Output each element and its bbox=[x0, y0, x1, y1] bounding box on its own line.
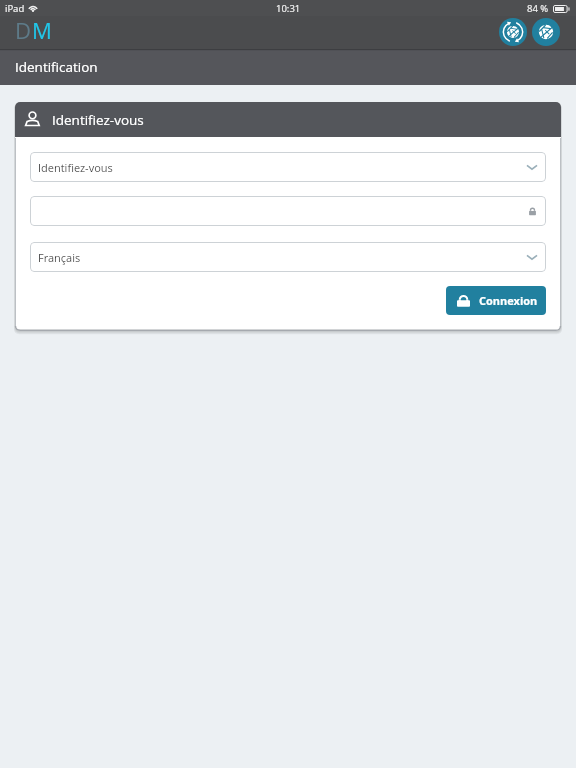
staticText: Identifiez-vous bbox=[38, 160, 113, 175]
button[interactable]: Identifiez-vous bbox=[30, 152, 546, 182]
staticText: 84 % bbox=[527, 2, 549, 15]
staticText: Identification bbox=[15, 58, 98, 76]
staticText: Français bbox=[38, 250, 81, 265]
staticText: D bbox=[15, 15, 32, 45]
staticText: iPad bbox=[5, 2, 25, 15]
staticText: M bbox=[32, 15, 52, 45]
staticText: Connexion bbox=[479, 293, 538, 308]
staticText: 10:31 bbox=[276, 2, 301, 15]
button[interactable] bbox=[30, 196, 546, 226]
button[interactable]: Français bbox=[30, 242, 546, 272]
button[interactable]: Synchroniser bbox=[499, 18, 527, 46]
button[interactable]: Connexion bbox=[446, 286, 546, 315]
button[interactable]: Globe bbox=[532, 18, 560, 46]
staticText: Identifiez-vous bbox=[52, 111, 144, 129]
